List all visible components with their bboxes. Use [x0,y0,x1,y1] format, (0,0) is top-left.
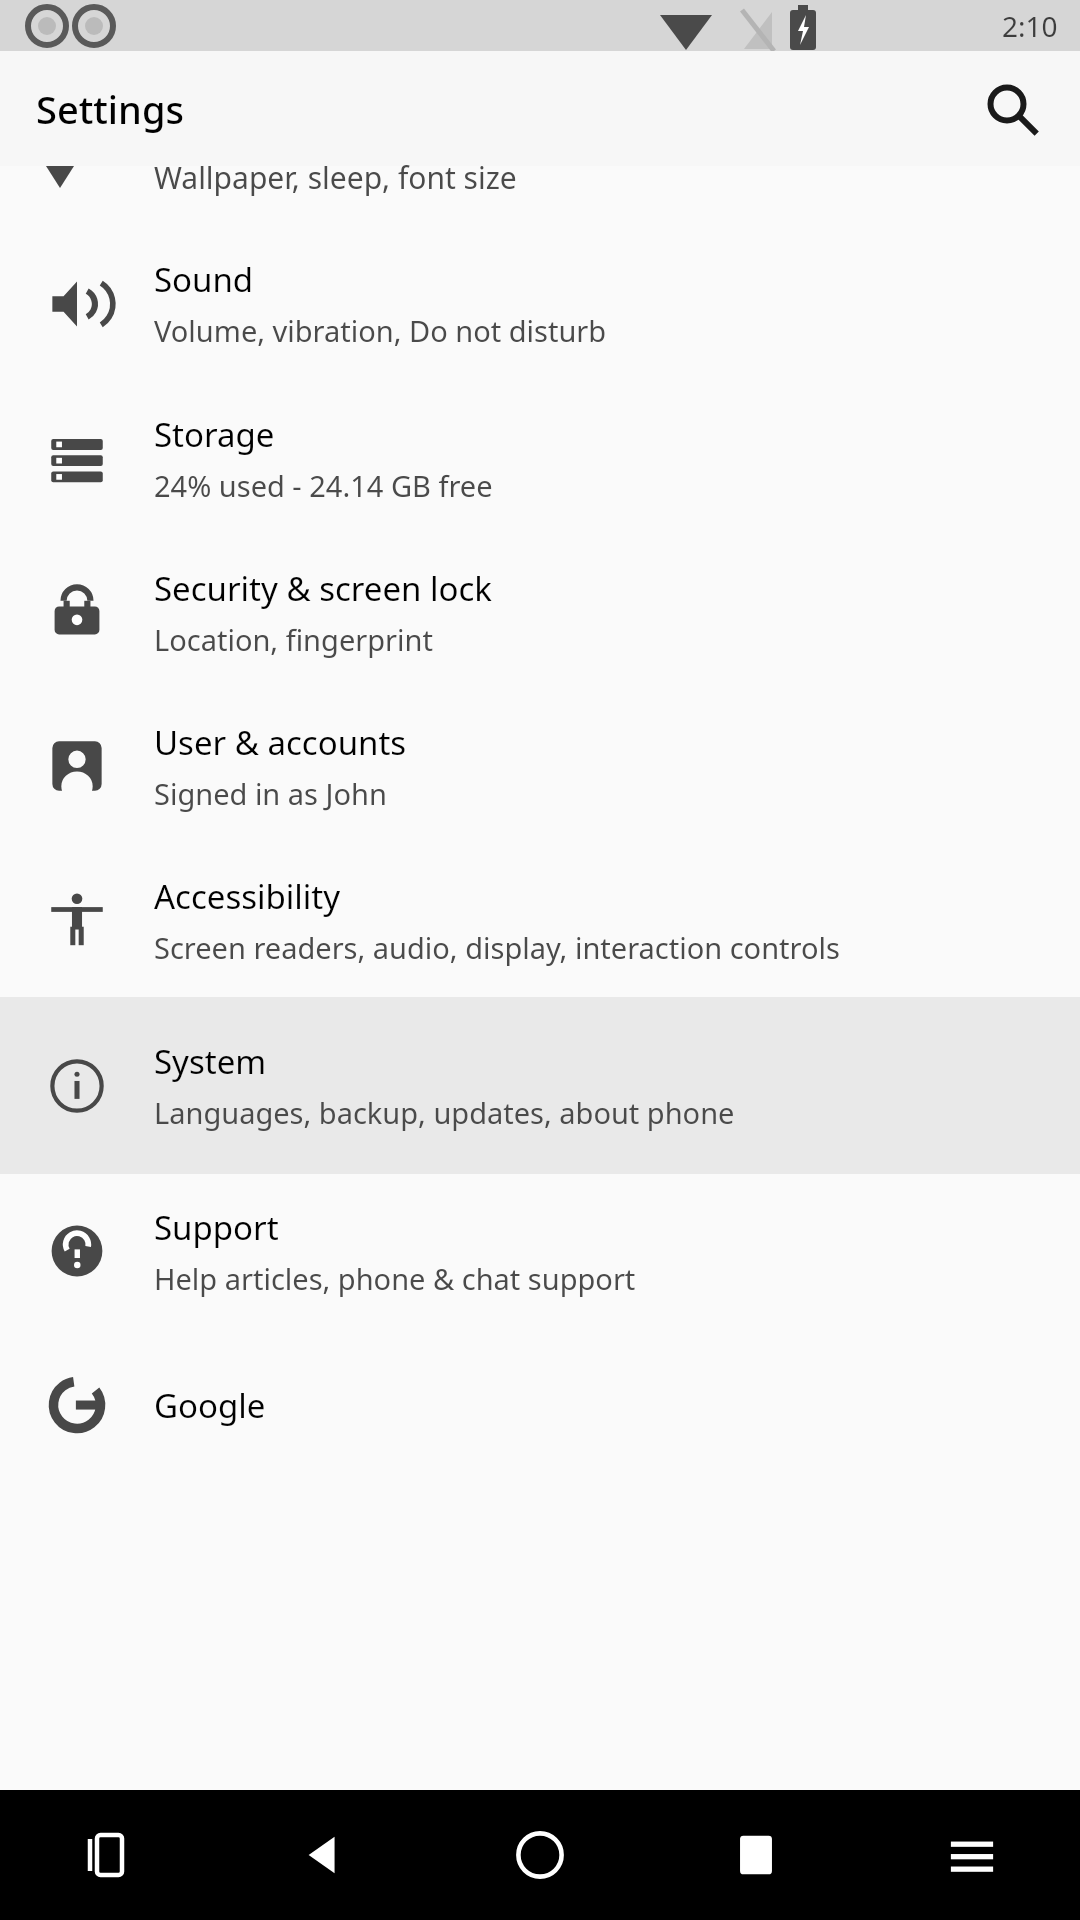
button[interactable]: Google [0,1328,1080,1482]
button[interactable]: Back [216,1790,432,1920]
staticText: System [154,1039,267,1084]
button[interactable]: Search [968,66,1054,152]
button[interactable]: Wallpaper, sleep, font size [0,166,1080,226]
staticText: Sound [154,257,254,302]
button[interactable]: Security & screen lock [0,535,1080,689]
button[interactable]: Accessibility [0,843,1080,997]
button[interactable]: Support [0,1174,1080,1328]
staticText: Settings [36,83,184,135]
staticText: Storage [154,412,275,457]
staticText: Help articles, phone & chat support [154,1259,636,1298]
button[interactable]: Menu [864,1790,1080,1920]
staticText: Screen readers, audio, display, interact… [154,928,840,967]
button[interactable]: Recent apps [0,1790,216,1920]
staticText: 24% used - 24.14 GB free [154,466,493,505]
button[interactable]: Stop [648,1790,864,1920]
staticText: Accessibility [154,874,341,919]
staticText: Location, fingerprint [154,620,433,659]
button[interactable]: Storage [0,381,1080,535]
staticText: User & accounts [154,720,407,765]
button[interactable]: System [0,997,1080,1174]
staticText: Volume, vibration, Do not disturb [154,311,607,350]
staticText: Google [154,1383,266,1428]
staticText: Security & screen lock [154,566,492,611]
staticText: Languages, backup, updates, about phone [154,1093,735,1132]
staticText: Signed in as John [154,774,387,813]
button[interactable]: User & accounts [0,689,1080,843]
staticText: Support [154,1205,279,1250]
button[interactable]: Home [432,1790,648,1920]
staticText: 2:10 [1002,7,1058,45]
button[interactable]: Sound [0,226,1080,381]
staticText: Wallpaper, sleep, font size [154,157,517,198]
